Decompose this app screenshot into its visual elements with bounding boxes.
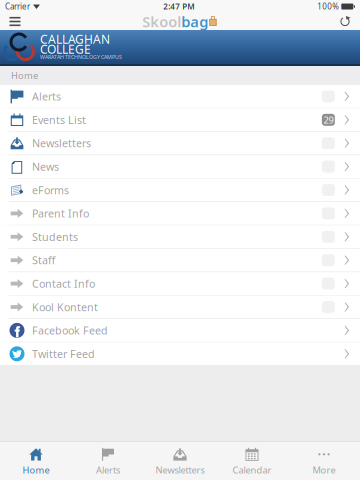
button[interactable]: Alerts xyxy=(72,440,144,480)
button[interactable]: Parent Info xyxy=(0,202,360,225)
button[interactable]: Calendar xyxy=(216,440,288,480)
staticText: Newsletters xyxy=(155,464,204,476)
staticText: Alerts xyxy=(96,464,120,476)
button[interactable]: Menu xyxy=(3,13,27,30)
staticText: 2:47 PM xyxy=(163,1,194,12)
staticText: Skool xyxy=(142,12,181,31)
staticText: Parent Info xyxy=(32,206,89,220)
button[interactable]: Events List xyxy=(0,108,360,132)
button[interactable]: Kool Kontent xyxy=(0,296,360,319)
button[interactable]: Twitter Feed xyxy=(0,342,360,366)
staticText: CALLAGHAN xyxy=(40,31,110,47)
button[interactable]: Facebook Feed xyxy=(0,319,360,342)
staticText: WARATAH TECHNOLOGY CAMPUS xyxy=(40,53,122,61)
staticText: Staff xyxy=(32,253,55,267)
button[interactable]: Contact Info xyxy=(0,272,360,296)
staticText: Calendar xyxy=(232,464,271,476)
staticText: 100% xyxy=(317,1,339,12)
staticText: Twitter Feed xyxy=(32,347,95,361)
staticText: Facebook Feed xyxy=(32,323,108,337)
staticText: 29 xyxy=(323,114,333,126)
staticText: Home xyxy=(11,69,38,82)
staticText: Contact Info xyxy=(32,276,95,291)
button[interactable]: Students xyxy=(0,225,360,249)
button[interactable]: Home xyxy=(0,440,72,480)
staticText: COLLEGE xyxy=(40,41,91,57)
staticText: eForms xyxy=(32,183,69,197)
staticText: Events List xyxy=(32,113,86,127)
staticText: bag xyxy=(181,12,208,31)
staticText: Alerts xyxy=(32,89,61,103)
staticText: More xyxy=(312,464,335,476)
staticText: Newsletters xyxy=(32,136,91,150)
button[interactable]: News xyxy=(0,155,360,179)
staticText: Kool Kontent xyxy=(32,300,98,314)
staticText: Students xyxy=(32,230,78,244)
button[interactable]: Staff xyxy=(0,249,360,272)
staticText: Carrier xyxy=(5,1,30,12)
staticText: Home xyxy=(22,464,49,476)
button[interactable]: Alerts xyxy=(0,85,360,108)
button[interactable]: eForms xyxy=(0,179,360,202)
button[interactable]: More xyxy=(288,440,360,480)
button[interactable]: Refresh xyxy=(333,13,357,30)
button[interactable]: Newsletters xyxy=(144,440,216,480)
staticText: News xyxy=(32,159,59,174)
button[interactable]: Newsletters xyxy=(0,132,360,155)
